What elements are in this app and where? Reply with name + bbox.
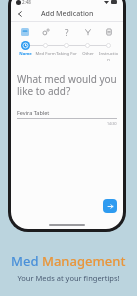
staticText: 14/40: [107, 121, 117, 126]
button[interactable]: Fevira Tablet: [17, 109, 117, 126]
staticText: ?: [65, 27, 69, 38]
button[interactable]: Step Taking For: [64, 43, 69, 48]
staticText: Instruction: [98, 51, 119, 63]
button[interactable]: Step Name active: [21, 41, 30, 50]
button[interactable]: Instruction: [98, 26, 119, 38]
staticText: Med Form: [35, 51, 56, 57]
staticText: 2:48: [22, 0, 31, 5]
button[interactable]: Step Med Form: [43, 43, 48, 48]
staticText: Other: [82, 51, 94, 57]
staticText: Management: [42, 252, 126, 270]
button[interactable]: Step Instruction: [106, 43, 111, 48]
button[interactable]: Step Other: [85, 43, 90, 48]
button[interactable]: Med Form: [35, 26, 56, 38]
button[interactable]: Back: [14, 8, 26, 20]
staticText: Taking For: [56, 51, 77, 57]
staticText: What med would you like to add?: [17, 72, 117, 98]
staticText: Name: [19, 51, 32, 57]
staticText: Your Meds at your fingertips!: [17, 273, 120, 283]
button[interactable]: Name: [15, 26, 35, 38]
staticText: Add Medication: [41, 9, 94, 19]
staticText: Med: [11, 252, 39, 270]
button[interactable]: Other: [77, 26, 98, 38]
button[interactable]: Next: [103, 199, 117, 213]
staticText: Fevira Tablet: [17, 109, 50, 116]
button[interactable]: Taking For: [56, 26, 77, 38]
